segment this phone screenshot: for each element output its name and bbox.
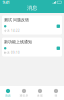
- staticText: 通讯录: [19, 94, 28, 97]
- button[interactable]: 新功能上线通知: [2, 37, 62, 56]
- button[interactable]: 通讯录: [16, 86, 32, 100]
- staticText: 测试 问题反馈: [4, 17, 29, 22]
- staticText: 昨天 09:10: [4, 51, 20, 54]
- staticText: 9:41: [2, 0, 9, 5]
- staticText: 新功能上线通知: [4, 39, 32, 44]
- button[interactable]: 消息: [0, 86, 16, 100]
- button[interactable]: 我: [48, 86, 64, 100]
- staticText: 今天 14:22: [4, 29, 20, 32]
- button[interactable]: 发现: [32, 86, 48, 100]
- staticText: 消息: [5, 94, 11, 97]
- staticText: 消息: [27, 5, 37, 11]
- staticText: 我: [54, 94, 57, 97]
- staticText: 发现: [37, 94, 43, 97]
- button[interactable]: 测试 问题反馈: [2, 15, 62, 34]
